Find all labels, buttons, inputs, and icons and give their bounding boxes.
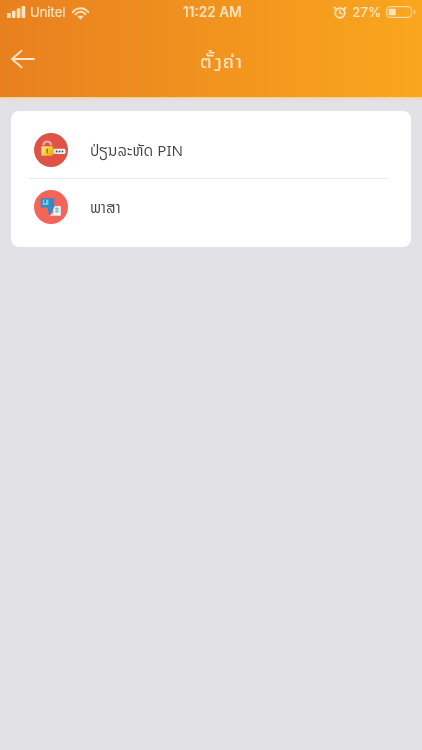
staticText: 11:22 AM: [183, 4, 242, 21]
button[interactable]: Back: [3, 39, 43, 79]
staticText: ຕັ້ງຄ່າ: [200, 47, 243, 77]
staticText: ປ່ຽນລະຫັດ PIN: [90, 138, 184, 163]
button[interactable]: ປ່ຽນລະຫັດ PIN: [11, 122, 411, 178]
staticText: Unitel: [30, 4, 66, 20]
staticText: ພາສາ: [90, 195, 121, 220]
button[interactable]: ພາສາ: [11, 179, 411, 235]
staticText: 27%: [352, 4, 382, 20]
